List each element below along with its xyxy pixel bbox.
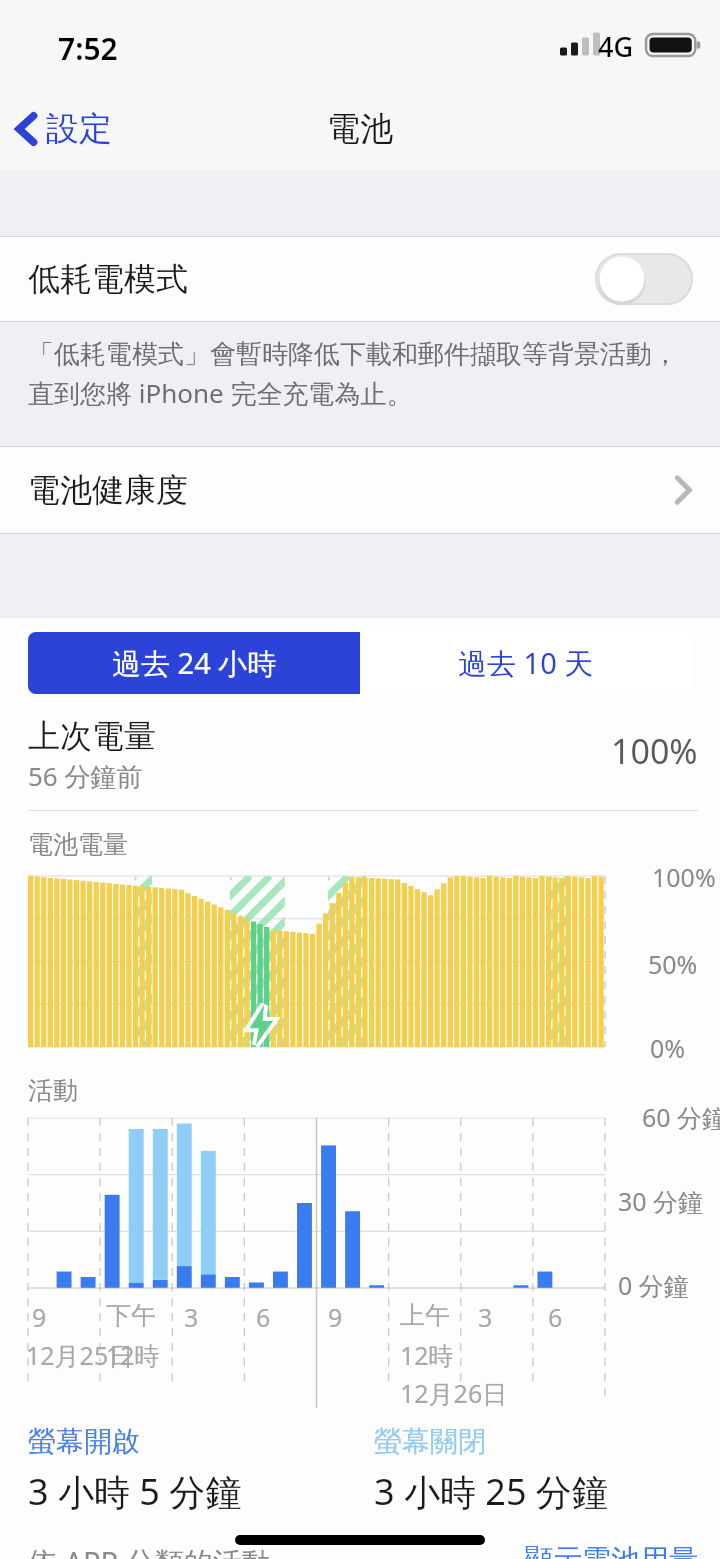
staticText: 過去 24 小時 <box>112 643 277 683</box>
staticText: 3 <box>184 1300 199 1334</box>
button[interactable]: 電池健康度 <box>0 447 720 533</box>
staticText: 電池電量 <box>28 829 128 860</box>
staticText: 60 分鐘 <box>642 1100 720 1134</box>
button[interactable]: 設定 <box>0 100 128 158</box>
staticText: 4G <box>598 28 634 65</box>
staticText: 上午 <box>400 1300 450 1331</box>
button[interactable]: 過去 24 小時 <box>28 632 360 694</box>
staticText: 下午 <box>106 1300 156 1331</box>
staticText: 3 小時 25 分鐘 <box>374 1467 608 1516</box>
button[interactable]: 低耗電模式 <box>0 237 720 321</box>
staticText: 100% <box>652 860 716 894</box>
staticText: 56 分鐘前 <box>28 758 143 794</box>
staticText: 6 <box>256 1300 271 1334</box>
staticText: 100% <box>611 728 698 774</box>
staticText: 設定 <box>46 108 112 150</box>
button[interactable]: 顯示電池用量 <box>524 1542 698 1559</box>
staticText: 0% <box>650 1031 686 1065</box>
staticText: 12時 <box>106 1338 160 1372</box>
staticText: 依 APP 分類的活動 <box>28 1542 524 1559</box>
staticText: 12月26日 <box>400 1376 508 1410</box>
staticText: 7:52 <box>58 28 118 69</box>
staticText: 上次電量 <box>28 716 156 756</box>
staticText: 30 分鐘 <box>618 1184 704 1218</box>
staticText: 50% <box>648 947 698 981</box>
staticText: 過去 10 天 <box>458 643 594 683</box>
staticText: 9 <box>32 1300 47 1334</box>
staticText: 3 小時 5 分鐘 <box>28 1467 242 1516</box>
staticText: 活動 <box>28 1075 78 1106</box>
staticText: 螢幕開啟 <box>28 1424 140 1459</box>
staticText: 6 <box>548 1300 563 1334</box>
staticText: 電池健康度 <box>28 470 188 510</box>
staticText: 顯示電池用量 <box>524 1542 698 1559</box>
staticText: 「低耗電模式」會暫時降低下載和郵件擷取等背景活動，直到您將 iPhone 完全充… <box>28 338 698 411</box>
staticText: 0 分鐘 <box>618 1268 689 1302</box>
staticText: 12時 <box>400 1338 454 1372</box>
button[interactable]: 過去 10 天 <box>360 632 692 694</box>
staticText: 螢幕關閉 <box>374 1424 486 1459</box>
staticText: 12月25日 <box>26 1338 134 1372</box>
staticText: 3 <box>478 1300 493 1334</box>
button[interactable]: 低耗電模式開關 <box>596 254 692 304</box>
staticText: 低耗電模式 <box>28 259 188 299</box>
staticText: 9 <box>328 1300 343 1334</box>
staticText: 電池 <box>327 108 393 150</box>
